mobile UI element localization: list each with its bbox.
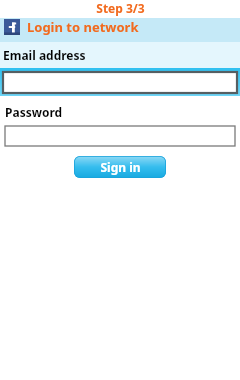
button[interactable]: Sign in: [74, 156, 166, 178]
staticText: Sign in: [100, 159, 141, 175]
other: Facebook: [4, 19, 20, 35]
button[interactable]: [3, 72, 237, 93]
staticText: Email address: [3, 47, 86, 63]
staticText: Login to network: [27, 18, 139, 36]
staticText: Password: [5, 104, 63, 120]
button[interactable]: Facebook: [0, 18, 240, 36]
staticText: Step 3/3: [96, 0, 145, 16]
button[interactable]: [5, 126, 235, 146]
